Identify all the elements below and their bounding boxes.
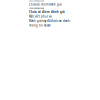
- staticText: Chưa có điểm đánh giá: [29, 0, 44, 2]
- staticText: Chưa có điểm đánh giá: [29, 7, 44, 9]
- staticText: Đánh giá này đã được ẩn danh.: [29, 19, 71, 23]
- staticText: Mức viết phục vụ: [29, 15, 52, 18]
- staticText: Chưa có điểm đánh giá: [29, 3, 61, 6]
- staticText: Chưa có điểm đánh giá: [29, 10, 65, 14]
- staticText: Thông tin khách: [29, 24, 51, 27]
